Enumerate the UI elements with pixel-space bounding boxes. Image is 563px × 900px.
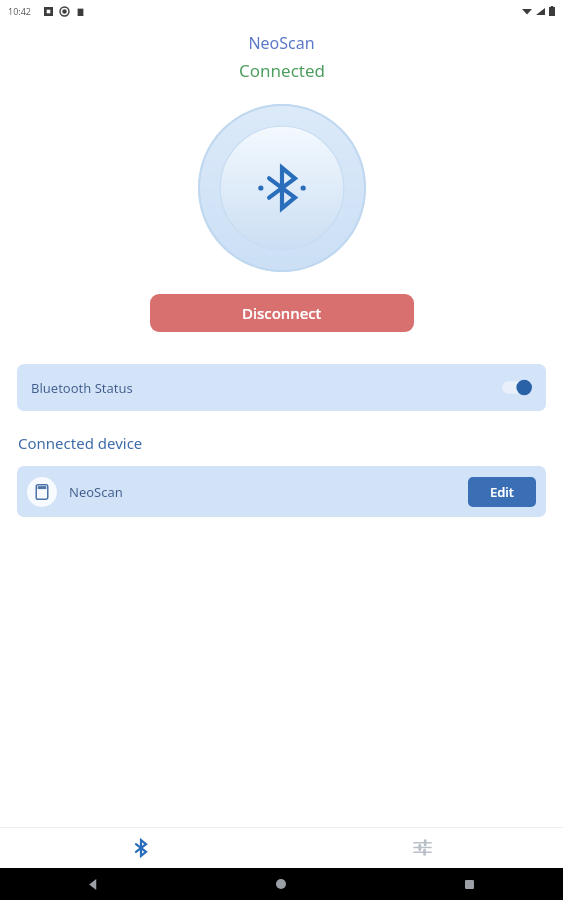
button[interactable]: Bluetooth toggle — [502, 380, 532, 395]
staticText: Edit — [490, 483, 514, 501]
staticText: Connected device — [18, 433, 143, 453]
button[interactable]: Bluetooth connection — [198, 104, 366, 272]
button[interactable]: Bluetooth — [0, 827, 281, 868]
button[interactable]: Settings — [281, 827, 563, 868]
button[interactable]: Disconnect — [150, 294, 414, 332]
staticText: NeoScan — [248, 32, 315, 54]
button[interactable]: Bluetooth Status — [17, 364, 546, 411]
staticText: Bluetooth Status — [31, 379, 133, 397]
button[interactable]: Edit — [468, 477, 536, 507]
staticText: 10:42 — [8, 5, 32, 17]
staticText: NeoScan — [69, 483, 123, 501]
button[interactable]: NeoScan — [17, 466, 546, 517]
staticText: Disconnect — [242, 303, 322, 323]
staticText: Connected — [239, 59, 325, 82]
